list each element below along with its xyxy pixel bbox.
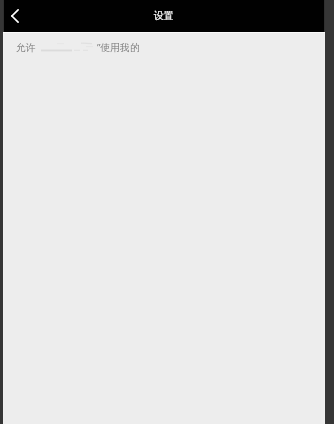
staticText: 允许 (16, 42, 36, 54)
staticText: ”使用我的 (97, 41, 140, 54)
staticText: 设置 (154, 10, 174, 22)
button[interactable]: Back (2, 3, 28, 29)
